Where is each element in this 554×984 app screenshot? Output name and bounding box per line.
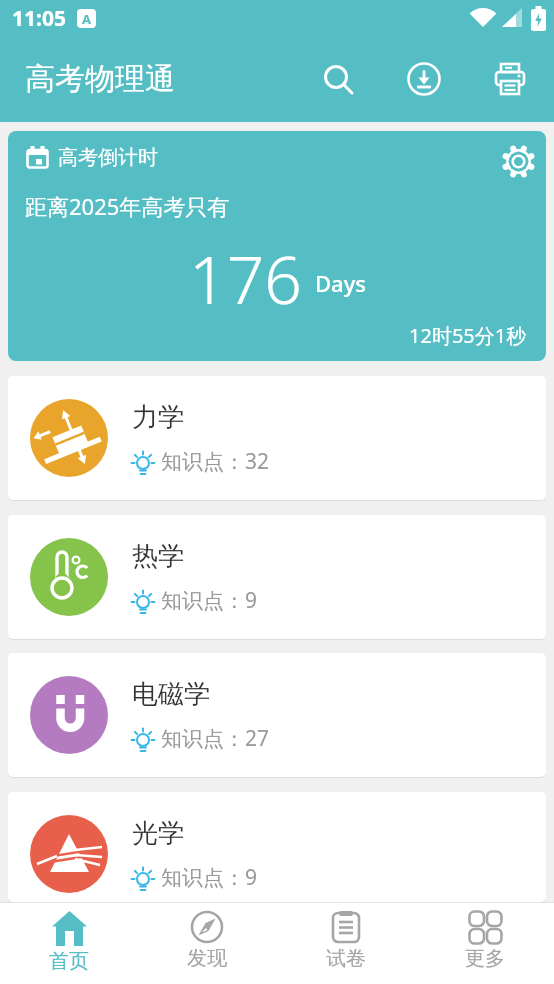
- staticText: 电磁学: [132, 678, 210, 711]
- button[interactable]: 试卷: [276, 903, 415, 984]
- staticText: 更多: [465, 946, 505, 971]
- staticText: 热学: [132, 540, 184, 573]
- staticText: 高考倒计时: [58, 145, 158, 170]
- staticText: 知识点：9: [161, 863, 258, 892]
- staticText: 11:05: [12, 4, 66, 33]
- staticText: 知识点：9: [161, 586, 258, 615]
- staticText: 试卷: [326, 946, 366, 971]
- staticText: 176: [189, 233, 303, 323]
- staticText: 力学: [132, 401, 184, 434]
- button[interactable]: 光学: [8, 792, 546, 902]
- button[interactable]: 高考倒计时: [8, 131, 546, 361]
- staticText: 光学: [132, 817, 184, 850]
- button[interactable]: [486, 55, 534, 103]
- button[interactable]: 发现: [138, 903, 276, 984]
- staticText: Days: [315, 268, 366, 298]
- button[interactable]: 热学: [8, 515, 546, 639]
- button[interactable]: 力学: [8, 376, 546, 500]
- staticText: A: [82, 10, 91, 28]
- staticText: 高考物理通: [25, 60, 175, 98]
- staticText: 知识点：32: [161, 447, 270, 476]
- button[interactable]: [494, 137, 542, 185]
- button[interactable]: [400, 55, 448, 103]
- staticText: 12时55分1秒: [409, 322, 527, 349]
- button[interactable]: 更多: [415, 903, 554, 984]
- staticText: 首页: [49, 949, 89, 974]
- staticText: 知识点：27: [161, 724, 270, 753]
- button[interactable]: 首页: [0, 903, 138, 984]
- staticText: 发现: [187, 946, 227, 971]
- button[interactable]: 电磁学: [8, 653, 546, 777]
- staticText: 距离2025年高考只有: [25, 191, 230, 221]
- button[interactable]: [314, 55, 362, 103]
